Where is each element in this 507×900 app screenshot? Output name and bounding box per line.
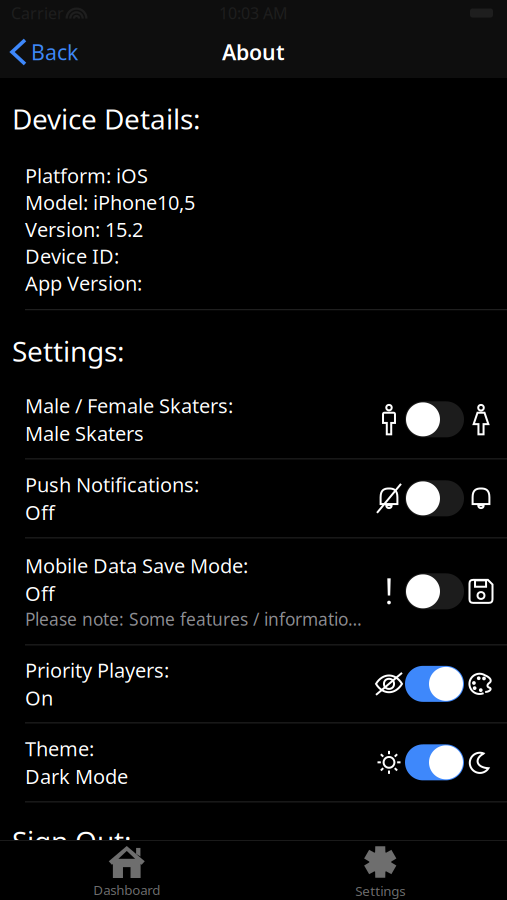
staticText: About: [222, 38, 285, 66]
button[interactable]: Toggle: [405, 401, 464, 437]
staticText: Version: 15.2: [25, 216, 143, 242]
staticText: Back: [31, 38, 78, 66]
staticText: Carrier: [11, 2, 64, 24]
button[interactable]: Settings: [253, 841, 507, 900]
staticText: Settings:: [12, 332, 125, 369]
staticText: Push Notifications:: [25, 471, 199, 498]
staticText: App Version:: [25, 270, 142, 296]
button[interactable]: Toggle: [405, 666, 464, 702]
button[interactable]: Back: [0, 26, 92, 78]
button[interactable]: Toggle: [405, 480, 464, 516]
staticText: On: [25, 684, 53, 711]
staticText: Platform: iOS: [25, 162, 148, 189]
staticText: Model: iPhone10,5: [25, 189, 195, 216]
staticText: Mobile Data Save Mode:: [25, 552, 248, 579]
staticText: 10:03 AM: [219, 2, 288, 24]
staticText: Device Details:: [12, 100, 201, 137]
button[interactable]: Toggle: [405, 744, 464, 780]
staticText: Priority Players:: [25, 657, 169, 683]
staticText: Dark Mode: [25, 763, 128, 789]
staticText: Device ID:: [25, 243, 119, 269]
staticText: Sign Out:: [12, 822, 132, 860]
staticText: Please note: Some features / information…: [25, 607, 370, 630]
staticText: Male / Female Skaters:: [25, 392, 233, 419]
staticText: Settings: [355, 882, 405, 900]
staticText: Off: [25, 499, 55, 525]
button[interactable]: Toggle: [405, 573, 464, 609]
staticText: Theme:: [25, 735, 94, 762]
button[interactable]: Dashboard: [0, 841, 253, 900]
staticText: Male Skaters: [25, 420, 144, 446]
staticText: Off: [25, 580, 55, 606]
staticText: Dashboard: [93, 881, 160, 899]
